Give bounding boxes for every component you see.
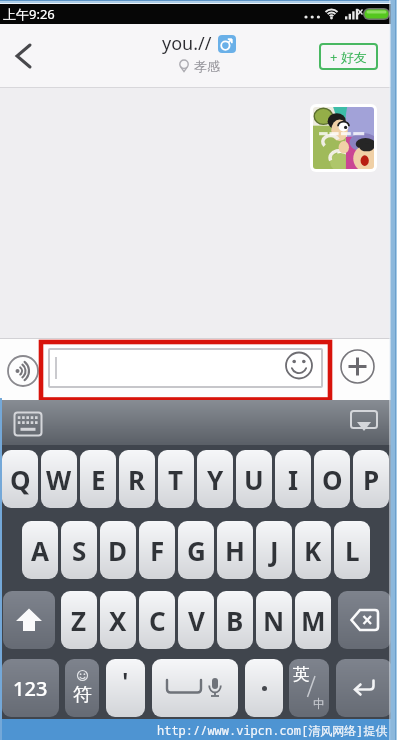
staticText: http://www.vipcn.com[清风网络]提供 — [157, 722, 388, 738]
button[interactable]: J — [256, 521, 292, 579]
staticText: 中 — [313, 696, 325, 711]
staticText: T — [168, 462, 184, 497]
staticText: K — [304, 533, 322, 568]
staticText: B — [226, 603, 244, 638]
button[interactable] — [6, 38, 42, 74]
button[interactable]: K — [295, 521, 331, 579]
button[interactable]: C — [139, 591, 175, 649]
button[interactable]: D — [100, 521, 136, 579]
button[interactable]: F — [139, 521, 175, 579]
button[interactable]: A — [22, 521, 58, 579]
staticText: Q — [10, 462, 31, 497]
staticText: 上午9:26 — [3, 5, 55, 23]
button[interactable] — [7, 355, 39, 387]
button[interactable]: 英 — [289, 659, 329, 717]
button[interactable]: I — [275, 450, 311, 508]
button[interactable]: + 好友 — [319, 43, 378, 70]
button[interactable] — [338, 591, 391, 649]
button[interactable]: G — [178, 521, 214, 579]
button[interactable]: Y — [197, 450, 233, 508]
button[interactable]: L — [334, 521, 370, 579]
staticText: ' — [122, 663, 129, 698]
button[interactable]: X — [100, 591, 136, 649]
staticText: O — [322, 462, 343, 497]
button[interactable]: T — [158, 450, 194, 508]
staticText: R — [128, 462, 146, 497]
button[interactable] — [245, 659, 283, 717]
button[interactable]: Z — [61, 591, 97, 649]
button[interactable]: M — [295, 591, 331, 649]
button[interactable] — [48, 348, 323, 388]
button[interactable]: B — [217, 591, 253, 649]
staticText: U — [244, 462, 264, 497]
button[interactable]: V — [178, 591, 214, 649]
staticText: 孝感 — [194, 58, 220, 74]
button[interactable]: 符 — [65, 659, 99, 717]
staticText: E — [91, 462, 106, 497]
button[interactable]: 123 — [2, 659, 59, 717]
staticText: H — [225, 533, 245, 568]
staticText: X — [109, 603, 127, 638]
staticText: Y — [207, 462, 224, 497]
button[interactable] — [3, 591, 55, 649]
staticText: A — [31, 533, 49, 568]
staticText: L — [345, 533, 360, 568]
button[interactable]: S — [61, 521, 97, 579]
staticText: F — [150, 533, 165, 568]
staticText: 英 — [293, 664, 310, 685]
staticText: D — [108, 533, 128, 568]
staticText: I — [288, 462, 299, 497]
staticText: 123 — [13, 675, 48, 702]
staticText: Z — [71, 603, 87, 638]
button[interactable] — [14, 412, 42, 437]
button[interactable]: P — [353, 450, 389, 508]
staticText: G — [187, 533, 206, 568]
staticText: + 好友 — [330, 48, 367, 66]
button[interactable]: ' — [106, 659, 145, 717]
button[interactable]: E — [80, 450, 116, 508]
staticText: V — [188, 603, 205, 638]
button[interactable]: U — [236, 450, 272, 508]
staticText: C — [149, 603, 166, 638]
button[interactable] — [340, 349, 375, 384]
button[interactable]: Q — [2, 450, 38, 508]
staticText: W — [46, 462, 72, 497]
staticText: S — [72, 533, 87, 568]
button[interactable] — [310, 104, 377, 172]
button[interactable]: H — [217, 521, 253, 579]
staticText: you.// — [162, 31, 212, 56]
staticText: 符 — [73, 683, 92, 707]
staticText: M — [301, 603, 326, 638]
button[interactable]: N — [256, 591, 292, 649]
button[interactable] — [350, 410, 378, 435]
button[interactable] — [152, 659, 238, 717]
staticText: P — [363, 462, 380, 497]
staticText: N — [263, 603, 285, 638]
button[interactable]: O — [314, 450, 350, 508]
button[interactable] — [336, 659, 392, 717]
button[interactable]: R — [119, 450, 155, 508]
staticText: J — [270, 533, 279, 568]
button[interactable]: W — [41, 450, 77, 508]
